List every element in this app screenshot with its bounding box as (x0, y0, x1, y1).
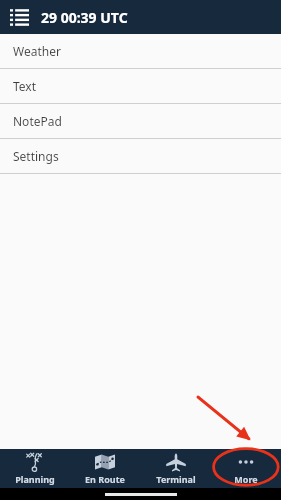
button[interactable]: Text (0, 69, 281, 103)
staticText: More (234, 473, 258, 485)
button[interactable]: Weather (0, 34, 281, 68)
button[interactable]: Terminal (141, 449, 211, 488)
button[interactable]: Settings (0, 139, 281, 173)
staticText: NotePad (13, 113, 62, 129)
button[interactable]: En Route (70, 449, 140, 488)
staticText: Text (13, 78, 37, 94)
staticText: 29 00:39 UTC (41, 8, 128, 27)
staticText: Terminal (156, 473, 196, 485)
button[interactable]: NotePad (0, 104, 281, 138)
staticText: Planning (15, 473, 55, 485)
button[interactable]: Planning (0, 449, 70, 488)
staticText: Settings (13, 148, 59, 164)
button[interactable]: Menu (7, 5, 31, 29)
staticText: Weather (13, 43, 61, 59)
staticText: En Route (85, 473, 125, 485)
button[interactable]: More (211, 449, 281, 488)
